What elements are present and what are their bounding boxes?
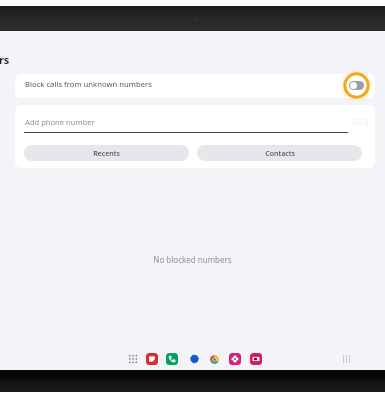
staticText: Contacts <box>265 148 295 158</box>
staticText: Add phone number <box>25 117 95 127</box>
staticText: Blocked numbers <box>0 52 10 67</box>
button[interactable]: Phone <box>166 353 178 365</box>
staticText: Recents <box>93 148 120 158</box>
button[interactable]: Gmail <box>146 353 158 365</box>
button[interactable]: Contacts <box>197 145 362 161</box>
button[interactable]: Chrome <box>208 353 220 365</box>
button[interactable]: YouTube <box>250 353 262 365</box>
staticText: Block calls from unknown numbers <box>25 79 152 89</box>
button[interactable]: Messages <box>188 353 200 365</box>
button[interactable]: Block calls from unknown numbers <box>15 74 375 98</box>
button[interactable]: Recents <box>24 145 189 161</box>
button[interactable]: Block calls from unknown numbers toggle <box>343 72 370 99</box>
button[interactable]: Apps <box>127 353 139 365</box>
button[interactable]: Photos <box>229 353 241 365</box>
staticText: No blocked numbers <box>0 254 385 265</box>
